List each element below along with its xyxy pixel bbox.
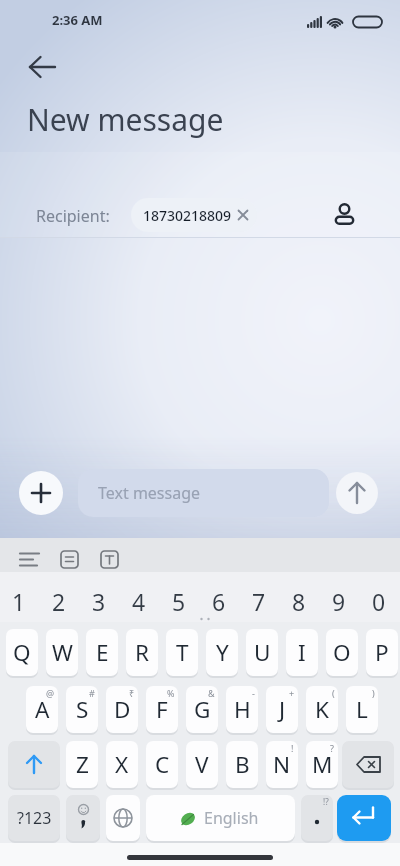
staticText: 8	[292, 586, 306, 617]
staticText: 2	[52, 586, 66, 617]
button[interactable]	[14, 547, 44, 571]
button[interactable]: M	[306, 741, 338, 788]
button[interactable]: Z	[66, 741, 98, 788]
button[interactable]: B	[226, 741, 258, 788]
staticText: 6	[212, 586, 226, 617]
staticText: &	[208, 687, 215, 699]
button[interactable]: 8	[279, 584, 319, 618]
button[interactable]: 18730218809	[131, 198, 257, 232]
button[interactable]: E	[86, 629, 118, 676]
staticText: Z	[76, 749, 89, 780]
staticText: )	[372, 687, 375, 699]
button[interactable]	[57, 547, 82, 571]
button[interactable]: C	[146, 741, 178, 788]
button[interactable]: T	[166, 629, 198, 676]
staticText: D	[114, 694, 131, 725]
staticText: -	[252, 687, 255, 699]
staticText: H	[234, 694, 251, 725]
staticText: O	[333, 637, 351, 668]
button[interactable]	[336, 472, 378, 514]
staticText: T	[176, 637, 189, 668]
button[interactable]: S	[66, 686, 98, 733]
button[interactable]: 4	[119, 584, 159, 618]
button[interactable]: 1	[0, 584, 39, 618]
staticText: 3	[92, 586, 106, 617]
staticText: G	[194, 694, 211, 725]
staticText: 5	[172, 586, 186, 617]
staticText: M	[312, 749, 333, 780]
staticText: 7	[252, 586, 266, 617]
button[interactable]: 9	[319, 584, 359, 618]
staticText: #	[89, 687, 95, 699]
button[interactable]: I	[286, 629, 318, 676]
button[interactable]: W	[46, 629, 78, 676]
staticText: E	[96, 637, 109, 668]
button[interactable]	[330, 198, 360, 232]
button[interactable]: V	[186, 741, 218, 788]
button[interactable]	[66, 795, 100, 841]
staticText: (	[332, 687, 335, 699]
staticText: !?	[323, 796, 329, 807]
button[interactable]	[19, 471, 63, 515]
staticText: Recipient:	[36, 205, 110, 227]
staticText: !	[291, 742, 294, 754]
button[interactable]: G	[186, 686, 218, 733]
staticText: Y	[216, 637, 229, 668]
button[interactable]: 3	[79, 584, 119, 618]
staticText: K	[315, 694, 329, 725]
button[interactable]: 6	[199, 584, 239, 618]
staticText: L	[356, 694, 368, 725]
button[interactable]: K	[306, 686, 338, 733]
button[interactable]: 0	[359, 584, 399, 618]
staticText: S	[76, 694, 89, 725]
button[interactable]: U	[246, 629, 278, 676]
button[interactable]: 2	[39, 584, 79, 618]
button[interactable]: N	[266, 741, 298, 788]
button[interactable]	[337, 795, 391, 841]
staticText: ?123	[17, 807, 52, 829]
staticText: U	[254, 637, 271, 668]
button[interactable]	[97, 547, 122, 571]
staticText: ?	[330, 742, 334, 754]
button[interactable]: 5	[159, 584, 199, 618]
staticText: +	[289, 687, 295, 699]
staticText: Text message	[98, 482, 201, 504]
staticText: R	[135, 637, 149, 668]
button[interactable]: Q	[6, 629, 38, 676]
button[interactable]: X	[106, 741, 138, 788]
staticText: C	[155, 749, 170, 780]
staticText: X	[115, 749, 129, 780]
button[interactable]: R	[126, 629, 158, 676]
button[interactable]: 7	[239, 584, 279, 618]
button[interactable]: ?123	[8, 795, 60, 841]
staticText: 1	[12, 586, 26, 617]
staticText: P	[375, 637, 389, 668]
button[interactable]: Y	[206, 629, 238, 676]
staticText: B	[235, 749, 250, 780]
staticText: N	[273, 749, 291, 780]
staticText: 4	[132, 586, 146, 617]
button[interactable]: A	[26, 686, 58, 733]
button[interactable]: English	[146, 795, 295, 841]
button[interactable]: H	[226, 686, 258, 733]
staticText: J	[279, 694, 286, 725]
button[interactable]: Text message	[78, 469, 329, 517]
staticText: 9	[332, 586, 346, 617]
button[interactable]: O	[326, 629, 358, 676]
button[interactable]	[106, 795, 140, 841]
button[interactable]: D	[106, 686, 138, 733]
button[interactable]: P	[366, 629, 398, 676]
staticText: I	[298, 637, 306, 668]
button[interactable]	[342, 741, 394, 788]
button[interactable]: !?	[301, 795, 333, 841]
staticText: 18730218809	[143, 206, 232, 225]
button[interactable]: F	[146, 686, 178, 733]
button[interactable]: L	[346, 686, 378, 733]
staticText: A	[35, 694, 50, 725]
button[interactable]	[18, 52, 62, 82]
staticText: Q	[13, 637, 31, 668]
staticText: 0	[372, 586, 386, 617]
button[interactable]	[8, 741, 60, 788]
staticText: V	[195, 749, 209, 780]
button[interactable]: J	[266, 686, 298, 733]
